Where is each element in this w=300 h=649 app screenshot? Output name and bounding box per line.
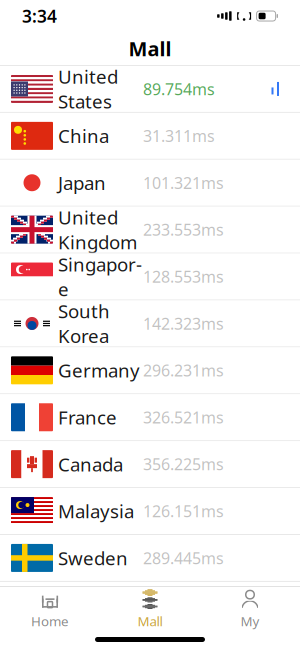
staticText: 128.553ms	[143, 266, 224, 287]
staticText: Mall	[137, 612, 162, 630]
button[interactable]: China	[0, 113, 300, 160]
staticText: 356.225ms	[143, 453, 224, 475]
staticText: Mall	[128, 35, 171, 62]
staticText: South Korea	[58, 299, 110, 348]
staticText: 3:34	[22, 4, 57, 27]
staticText: Malaysia	[58, 499, 134, 523]
staticText: 126.151ms	[143, 500, 224, 522]
staticText: Japan	[58, 170, 106, 195]
staticText: 142.323ms	[143, 313, 224, 334]
button[interactable]: Sweden	[0, 535, 300, 582]
button[interactable]: United States	[0, 66, 300, 113]
button[interactable]: Japan	[0, 160, 300, 207]
staticText: Sweden	[58, 546, 128, 570]
staticText: Germany	[58, 358, 140, 383]
staticText: China	[58, 123, 109, 148]
button[interactable]: Germany	[0, 347, 300, 394]
button[interactable]: Canada	[0, 441, 300, 488]
staticText: 31.311ms	[143, 125, 215, 146]
staticText: 101.321ms	[143, 172, 224, 193]
staticText: Singapore	[58, 252, 142, 301]
staticText: My	[240, 612, 259, 630]
staticText: United Kingdom	[58, 205, 137, 254]
button[interactable]: Home	[0, 587, 100, 633]
button[interactable]: My	[200, 587, 300, 633]
staticText: 233.553ms	[143, 219, 224, 240]
button[interactable]: France	[0, 394, 300, 441]
staticText: 326.521ms	[143, 407, 224, 428]
staticText: Canada	[58, 452, 123, 477]
staticText: 289.445ms	[143, 547, 224, 568]
staticText: France	[58, 405, 117, 430]
staticText: Home	[31, 612, 69, 630]
staticText: 89.754ms	[143, 78, 215, 99]
button[interactable]: Singapore	[0, 254, 300, 300]
button[interactable]: South Korea	[0, 300, 300, 347]
staticText: 296.231ms	[143, 360, 224, 381]
staticText: United States	[58, 64, 118, 114]
button[interactable]: Malaysia	[0, 488, 300, 535]
button[interactable]: Mall	[100, 587, 200, 633]
button[interactable]: United Kingdom	[0, 207, 300, 254]
